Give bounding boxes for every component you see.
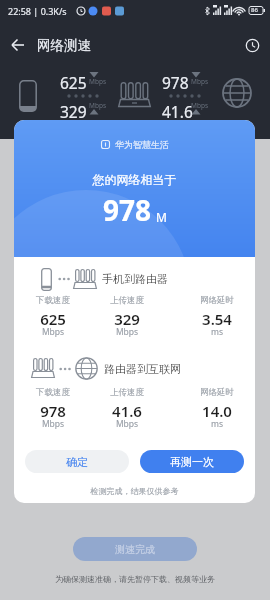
staticText: 978 bbox=[21, 401, 85, 421]
staticText: ms bbox=[185, 326, 249, 338]
staticText: Mbps bbox=[95, 326, 159, 338]
button[interactable] bbox=[6, 33, 30, 57]
staticText: 您的网络相当于 bbox=[14, 172, 255, 187]
staticText: 网络延时 bbox=[185, 295, 249, 306]
staticText: 再测一次 bbox=[170, 455, 214, 469]
staticText: 确定 bbox=[66, 455, 88, 469]
staticText: 978 bbox=[103, 191, 152, 229]
button[interactable]: 测速完成 bbox=[73, 537, 197, 561]
button[interactable]: 确定 bbox=[25, 450, 129, 473]
staticText: Mbps bbox=[191, 101, 209, 110]
staticText: Mbps bbox=[21, 418, 85, 430]
staticText: 网络测速 bbox=[37, 37, 91, 54]
staticText: 14.0 bbox=[185, 401, 249, 421]
button[interactable] bbox=[240, 33, 264, 57]
button[interactable]: 再测一次 bbox=[140, 450, 244, 473]
staticText: 上传速度 bbox=[95, 295, 159, 306]
staticText: 86 bbox=[251, 6, 258, 14]
staticText: 上传速度 bbox=[95, 387, 159, 398]
staticText: 路由器到互联网 bbox=[104, 362, 181, 376]
staticText: Mbps bbox=[95, 418, 159, 430]
staticText: Mbps bbox=[89, 77, 107, 86]
staticText: 下载速度 bbox=[21, 387, 85, 398]
staticText: 3.54 bbox=[185, 309, 249, 329]
staticText: 625 bbox=[21, 309, 85, 329]
staticText: 329 bbox=[95, 309, 159, 329]
staticText: 625 bbox=[60, 72, 87, 93]
staticText: 41.6 bbox=[162, 101, 193, 122]
staticText: 网络延时 bbox=[185, 387, 249, 398]
staticText: 978 bbox=[162, 72, 189, 93]
staticText: 22:58 | 0.3K/s bbox=[8, 5, 67, 17]
staticText: 华为智慧生活 bbox=[115, 139, 169, 150]
staticText: Mbps bbox=[191, 77, 209, 86]
staticText: Mbps bbox=[21, 326, 85, 338]
staticText: Mbps bbox=[89, 101, 107, 110]
staticText: 检测完成，结果仅供参考 bbox=[14, 486, 255, 496]
staticText: ms bbox=[185, 418, 249, 430]
staticText: 为确保测速准确，请先暂停下载、视频等业务 bbox=[0, 574, 270, 584]
staticText: M bbox=[156, 209, 167, 225]
staticText: 手机到路由器 bbox=[102, 272, 168, 286]
staticText: 41.6 bbox=[95, 401, 159, 421]
staticText: 329 bbox=[60, 101, 87, 122]
staticText: 下载速度 bbox=[21, 295, 85, 306]
staticText: 测速完成 bbox=[115, 543, 155, 556]
